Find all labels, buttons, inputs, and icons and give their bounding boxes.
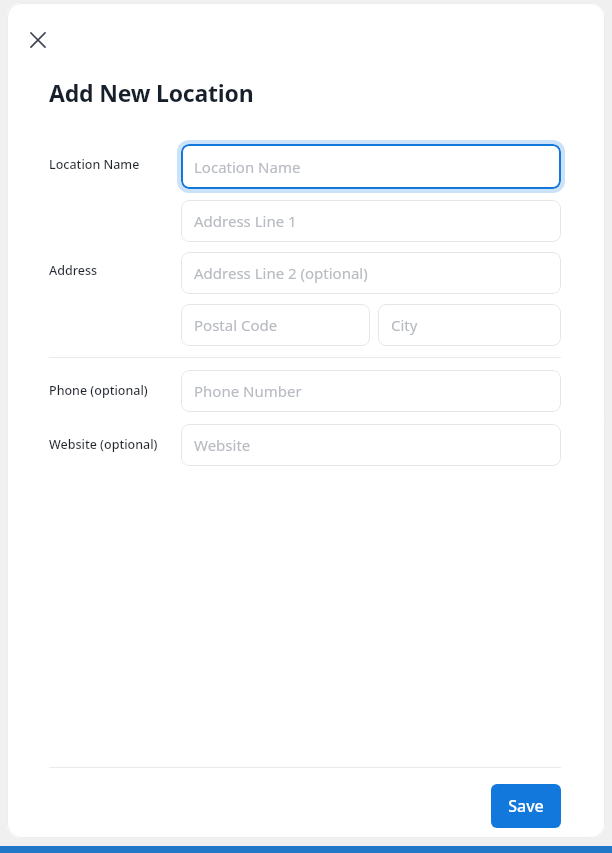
button[interactable]: Save xyxy=(491,784,561,828)
staticText: Website xyxy=(194,435,251,455)
staticText: Location Name xyxy=(194,157,301,177)
staticText: Website (optional) xyxy=(49,436,158,453)
staticText: Add New Location xyxy=(49,77,254,108)
staticText: Postal Code xyxy=(194,315,278,335)
staticText: Address Line 1 xyxy=(194,211,297,231)
button[interactable]: Address Line 1 xyxy=(181,200,561,242)
staticText: Phone (optional) xyxy=(49,382,148,399)
button[interactable]: Website xyxy=(181,424,561,466)
button[interactable]: Phone Number xyxy=(181,370,561,412)
staticText: Save xyxy=(508,795,544,817)
button[interactable]: Location Name xyxy=(181,144,561,189)
button[interactable]: Close xyxy=(22,24,54,56)
staticText: City xyxy=(391,315,418,335)
staticText: Address Line 2 (optional) xyxy=(194,263,368,283)
button[interactable]: City xyxy=(378,304,561,346)
button[interactable]: Address Line 2 (optional) xyxy=(181,252,561,294)
staticText: Address xyxy=(49,262,98,279)
staticText: Phone Number xyxy=(194,381,302,401)
staticText: Location Name xyxy=(49,156,140,173)
button[interactable]: Postal Code xyxy=(181,304,370,346)
